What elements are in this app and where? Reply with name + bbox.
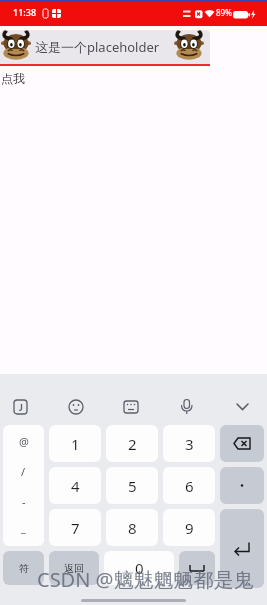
staticText: 返回 bbox=[64, 562, 84, 575]
staticText: 9 bbox=[185, 518, 194, 538]
button[interactable] bbox=[173, 394, 199, 420]
staticText: 这是一个placeholder bbox=[35, 38, 160, 56]
button[interactable]: @ bbox=[3, 425, 44, 546]
button[interactable]: 4 bbox=[49, 467, 101, 504]
staticText: 1 bbox=[71, 434, 80, 454]
button[interactable]: 0 bbox=[104, 551, 174, 585]
button[interactable]: 3 bbox=[163, 425, 215, 462]
staticText: 11:38 bbox=[13, 6, 37, 18]
button[interactable]: 9 bbox=[163, 509, 215, 546]
staticText: _ bbox=[21, 520, 26, 535]
button[interactable] bbox=[8, 394, 34, 420]
staticText: 3 bbox=[185, 434, 194, 454]
button[interactable]: 点我 bbox=[1, 70, 31, 86]
button[interactable]: 7 bbox=[49, 509, 101, 546]
staticText: 2 bbox=[128, 434, 137, 454]
staticText: CSDN @魑魅魍魉都是鬼 bbox=[37, 566, 254, 593]
button[interactable]: 8 bbox=[106, 509, 158, 546]
staticText: 7 bbox=[71, 518, 80, 538]
button[interactable]: 返回 bbox=[49, 551, 99, 585]
staticText: 5 bbox=[128, 476, 137, 496]
staticText: 8 bbox=[128, 518, 137, 538]
staticText: 4 bbox=[71, 476, 80, 496]
staticText: 符 bbox=[19, 562, 29, 575]
button[interactable]: 2 bbox=[106, 425, 158, 462]
staticText: 89% bbox=[216, 7, 232, 18]
button[interactable] bbox=[118, 394, 144, 420]
staticText: 点我 bbox=[1, 71, 25, 86]
button[interactable] bbox=[220, 509, 264, 588]
staticText: @ bbox=[19, 434, 29, 449]
staticText: 6 bbox=[185, 476, 194, 496]
button[interactable]: 5 bbox=[106, 467, 158, 504]
button[interactable] bbox=[229, 394, 255, 420]
button[interactable] bbox=[63, 394, 89, 420]
button[interactable] bbox=[179, 551, 215, 585]
staticText: / bbox=[21, 464, 26, 479]
button[interactable]: 1 bbox=[49, 425, 101, 462]
button[interactable] bbox=[220, 467, 264, 504]
button[interactable]: 符 bbox=[3, 551, 44, 585]
button[interactable]: 6 bbox=[163, 467, 215, 504]
staticText: - bbox=[22, 494, 26, 509]
staticText: 0 bbox=[135, 558, 144, 578]
button[interactable] bbox=[220, 425, 264, 462]
button[interactable]: 这是一个placeholder bbox=[0, 30, 210, 64]
